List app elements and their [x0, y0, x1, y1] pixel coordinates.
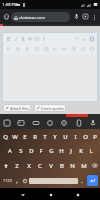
button[interactable]: Format option 7	[60, 45, 67, 52]
button[interactable]: B	[56, 158, 67, 173]
button[interactable]: Keyboard tool 7	[88, 118, 98, 128]
button[interactable]: Format option 3	[23, 45, 30, 52]
button[interactable]: Format option 5	[42, 45, 49, 52]
staticText: U	[63, 133, 68, 141]
staticText: X	[27, 162, 31, 170]
staticText: .	[81, 177, 83, 185]
button[interactable]: ?123	[1, 174, 13, 187]
button[interactable]: Keyboard tool 5	[59, 118, 69, 128]
staticText: R	[33, 133, 37, 141]
button[interactable]: K	[76, 144, 86, 158]
staticText: T	[43, 133, 47, 141]
button[interactable]: Shift	[0, 158, 11, 173]
staticText: N	[70, 162, 75, 170]
staticText: Insert quotes	[41, 106, 64, 111]
button[interactable]: F	[36, 144, 46, 158]
staticText: K	[79, 147, 83, 155]
button[interactable]: C	[34, 158, 45, 173]
staticText: F	[39, 147, 43, 155]
staticText: Y	[53, 133, 57, 141]
button[interactable]: Backspace	[89, 158, 100, 173]
button[interactable]: G	[46, 144, 56, 158]
button[interactable]: Divider	[40, 35, 47, 42]
button[interactable]: V	[45, 158, 56, 173]
button[interactable]: J	[66, 144, 76, 158]
button[interactable]: Undo	[73, 35, 80, 42]
button[interactable]: Profile	[81, 12, 90, 21]
button[interactable]: O	[80, 130, 90, 144]
staticText: Attach files	[10, 106, 29, 111]
button[interactable]: M	[78, 158, 89, 173]
button[interactable]: R	[30, 130, 40, 144]
button[interactable]: Enter	[87, 175, 98, 186]
button[interactable]: Home	[45, 189, 56, 200]
button[interactable]: More options	[90, 13, 98, 21]
button[interactable]: Redo	[80, 35, 87, 42]
button[interactable]: Format option 8	[70, 45, 77, 52]
staticText: Q	[3, 133, 8, 141]
staticText: I	[15, 36, 17, 42]
button[interactable]: Clipboard	[88, 35, 95, 42]
button[interactable]: P	[90, 130, 100, 144]
button[interactable]: W	[10, 130, 20, 144]
staticText: B	[7, 36, 10, 42]
staticText: ?123	[3, 178, 12, 183]
staticText: E	[23, 133, 27, 141]
staticText: ,	[16, 177, 18, 185]
button[interactable]: Keyboard tool 2	[16, 118, 26, 128]
button[interactable]: L	[86, 144, 96, 158]
button[interactable]: Back	[17, 189, 28, 200]
staticText: C	[38, 162, 42, 170]
button[interactable]: T	[40, 130, 50, 144]
button[interactable]: Home	[2, 12, 11, 21]
button[interactable]: Format option 10	[88, 45, 95, 52]
staticText: J	[70, 147, 72, 155]
staticText: A	[8, 147, 12, 155]
staticText: I	[74, 133, 77, 141]
staticText: 1:08 PM	[2, 2, 18, 7]
button[interactable]: Voice search	[72, 12, 81, 21]
staticText: V	[49, 162, 53, 170]
button[interactable]: Attach files	[3, 104, 31, 112]
button[interactable]: U	[60, 130, 70, 144]
button[interactable]: chatzozo.com	[11, 12, 70, 22]
button[interactable]: Insert image	[33, 35, 40, 42]
button[interactable]: Format option 2	[14, 45, 21, 52]
button[interactable]: Insert quotes	[34, 104, 66, 112]
button[interactable]: Keyboard tool 1	[2, 118, 12, 128]
button[interactable]: S	[15, 144, 26, 158]
button[interactable]: Format option 6	[51, 45, 58, 52]
button[interactable]: Format option 1	[5, 45, 12, 52]
staticText: P	[93, 133, 97, 141]
button[interactable]: A	[4, 144, 15, 158]
staticText: Z	[15, 162, 19, 170]
button[interactable]: Keyboard tool 6	[74, 118, 84, 128]
button[interactable]: Z	[11, 158, 23, 173]
button[interactable]: Keyboard tool 4	[45, 118, 55, 128]
button[interactable]: H	[56, 144, 66, 158]
button[interactable]: Insert link	[26, 35, 33, 42]
button[interactable]: N	[67, 158, 78, 173]
button[interactable]: Format option 9	[79, 45, 86, 52]
button[interactable]: I	[70, 130, 80, 144]
button[interactable]: Q	[0, 130, 10, 144]
button[interactable]: E	[20, 130, 30, 144]
button[interactable]: .	[78, 174, 86, 187]
staticText: H	[59, 147, 64, 155]
button[interactable]: Format option 4	[33, 45, 40, 52]
staticText: B	[60, 162, 64, 170]
button[interactable]: Y	[50, 130, 60, 144]
button[interactable]: Keyboard tool 3	[31, 118, 41, 128]
button[interactable]: Underline	[19, 35, 26, 42]
button[interactable]: I	[12, 35, 19, 42]
staticText: W	[12, 133, 18, 141]
button[interactable]: Recent apps	[72, 189, 83, 200]
button[interactable]: ,	[13, 174, 21, 187]
button[interactable]: Space	[29, 178, 78, 184]
button[interactable]: B	[5, 35, 12, 42]
button[interactable]: Emoji	[21, 174, 29, 187]
staticText: O	[83, 133, 88, 141]
button[interactable]: D	[26, 144, 36, 158]
button[interactable]: X	[23, 158, 34, 173]
